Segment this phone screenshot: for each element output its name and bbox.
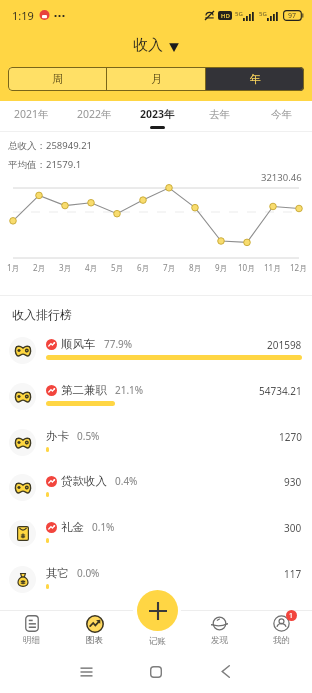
staticText: 平均值：21579.1 [8, 158, 82, 171]
button[interactable]: Back [221, 665, 230, 678]
staticText: 第二兼职 [61, 383, 107, 397]
staticText: 去年 [209, 108, 230, 121]
staticText: 1:19 [12, 8, 34, 23]
staticText: 1月 [7, 262, 20, 273]
staticText: 图表 [86, 635, 103, 646]
staticText: 117 [284, 567, 302, 581]
staticText: 201598 [267, 338, 302, 352]
button[interactable]: 2022年 [63, 101, 126, 131]
button[interactable]: Home [150, 666, 162, 678]
staticText: 顺风车 [61, 337, 96, 351]
staticText: 贷款收入 [61, 474, 107, 488]
staticText: 300 [284, 521, 302, 535]
staticText: 总收入：258949.21 [8, 139, 93, 152]
staticText: 0.1% [92, 520, 115, 534]
button[interactable]: 2023年 [126, 101, 188, 131]
staticText: HD [221, 12, 230, 20]
staticText: 办卡 [46, 429, 69, 443]
button[interactable]: 其它 [0, 556, 312, 602]
button[interactable]: 第二兼职 [0, 373, 312, 419]
button[interactable]: 明细 [0, 611, 63, 651]
staticText: 4月 [85, 262, 98, 273]
staticText: 9月 [215, 262, 228, 273]
staticText: 7月 [163, 262, 176, 273]
staticText: 21.1% [115, 383, 144, 397]
button[interactable]: 礼金 [0, 510, 312, 556]
button[interactable] [126, 611, 188, 651]
staticText: 2021年 [14, 107, 49, 121]
staticText: 5G [259, 10, 267, 18]
staticText: 明细 [23, 635, 40, 646]
staticText: 5G [235, 10, 243, 18]
staticText: 年 [250, 72, 261, 86]
staticText: 1 [289, 611, 294, 621]
staticText: 周 [52, 72, 63, 86]
button[interactable]: 今年 [250, 101, 312, 131]
staticText: 2022年 [77, 107, 112, 121]
staticText: 2月 [33, 262, 46, 273]
staticText: 0.5% [77, 429, 100, 443]
staticText: 11月 [264, 262, 282, 273]
staticText: 54734.21 [259, 384, 302, 398]
staticText: 2023年 [140, 107, 175, 121]
button[interactable]: 收入 [123, 33, 189, 58]
staticText: 收入排行榜 [12, 307, 72, 322]
staticText: 月 [151, 72, 162, 86]
button[interactable]: 去年 [188, 101, 250, 131]
button[interactable]: 年 [206, 67, 304, 91]
button[interactable]: 记账 add [137, 590, 178, 631]
staticText: 记账 [149, 636, 166, 647]
button[interactable]: 1 [250, 611, 312, 651]
staticText: 5月 [111, 262, 124, 273]
staticText: 6月 [137, 262, 150, 273]
staticText: 今年 [271, 108, 292, 121]
staticText: 收入 [133, 36, 163, 55]
button[interactable]: Recents [80, 666, 93, 678]
button[interactable]: 图表 [63, 611, 126, 651]
staticText: 32130.46 [261, 171, 302, 184]
staticText: 12月 [290, 262, 308, 273]
staticText: 1270 [279, 430, 302, 444]
button[interactable]: 发现 [188, 611, 250, 651]
button[interactable]: 办卡 [0, 419, 312, 465]
staticText: 0.0% [77, 566, 100, 580]
staticText: 0.4% [115, 474, 138, 488]
staticText: 930 [284, 475, 302, 489]
staticText: 77.9% [104, 337, 133, 351]
staticText: 礼金 [61, 520, 84, 534]
staticText: 3月 [59, 262, 72, 273]
button[interactable]: 顺风车 [0, 327, 312, 373]
button[interactable]: 2021年 [0, 101, 63, 131]
button[interactable]: 贷款收入 [0, 464, 312, 510]
button[interactable]: 周 [8, 67, 106, 91]
button[interactable]: 月 [107, 67, 205, 91]
staticText: 8月 [189, 262, 202, 273]
staticText: 10月 [238, 262, 256, 273]
staticText: 我的 [273, 635, 290, 646]
staticText: 97 [288, 11, 297, 21]
staticText: 发现 [211, 635, 228, 646]
staticText: 其它 [46, 566, 69, 580]
